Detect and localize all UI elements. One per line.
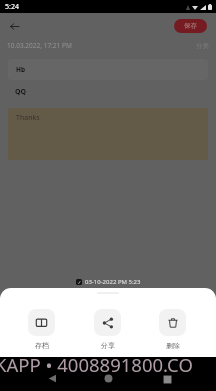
staticText: 删除 [166,341,180,350]
button[interactable]: 保存 [174,19,207,33]
button[interactable]: Hb [8,59,208,80]
button[interactable]: 存档 [28,309,55,350]
button[interactable]: Back [47,373,58,384]
button[interactable]: 删除 [159,309,186,350]
staticText: Hb [16,65,26,74]
button[interactable]: 分享 [94,309,121,350]
staticText: 存档 [35,341,49,350]
staticText: QQ [15,87,27,97]
staticText: KAPP • 4008891800.CO [0,352,211,377]
button[interactable]: Home [103,373,114,384]
staticText: Thanks [16,113,40,123]
staticText: 10.03.2022, 17:21 PM [7,41,72,50]
button[interactable]: 分类 [196,42,209,50]
button[interactable]: Back [3,15,25,37]
staticText: 03-10-2022 PM 5:23 [85,278,141,286]
button[interactable]: Recent apps [162,374,173,385]
staticText: 5:24 [5,2,19,12]
staticText: 保存 [184,22,197,30]
staticText: 分享 [101,341,115,350]
